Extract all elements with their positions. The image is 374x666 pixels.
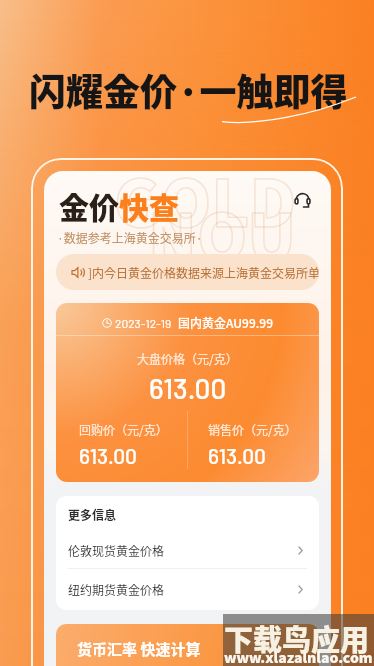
staticText: 销售价（元/克） xyxy=(208,421,297,438)
button[interactable]: 纽约期货黄金价格 xyxy=(56,569,319,609)
button[interactable]: 伦敦现货黄金价格 xyxy=(56,530,319,570)
staticText: 613.00 xyxy=(79,443,137,468)
staticText: 金价 xyxy=(59,184,119,227)
button[interactable]: 在线客服 xyxy=(289,187,315,213)
staticText: 国内黄金AU99.99 xyxy=(178,314,274,331)
staticText: 纽约期货黄金价格 xyxy=(68,581,165,598)
staticText: 闪耀金价·一触即得 xyxy=(29,63,348,117)
button[interactable]: ]内今日黄金价格数据来源上海黄金交易所单 xyxy=(56,254,319,290)
staticText: ·数据参考上海黄金交易所· xyxy=(57,229,203,246)
staticText: 2023-12-19 xyxy=(115,316,172,330)
staticText: 伦敦现货黄金价格 xyxy=(68,542,165,559)
button[interactable]: 货币汇率 快速计算 xyxy=(56,624,319,666)
staticText: 613.00 xyxy=(208,443,266,468)
staticText: 回购价（元/克） xyxy=(79,421,168,438)
staticText: www.xlazalnlao.com xyxy=(224,647,373,666)
staticText: 更多信息 xyxy=(68,506,117,523)
staticText: 快查 xyxy=(119,184,179,227)
staticText: GOLD xyxy=(114,153,297,246)
staticText: 货币汇率 快速计算 xyxy=(77,638,201,660)
staticText: ]内今日黄金价格数据来源上海黄金交易所单 xyxy=(88,264,319,281)
staticText: 613.00 xyxy=(149,371,227,405)
staticText: NOU xyxy=(148,187,297,280)
staticText: 下载鸟应用 xyxy=(224,617,370,659)
staticText: 大盘价格（元/克） xyxy=(137,350,238,367)
